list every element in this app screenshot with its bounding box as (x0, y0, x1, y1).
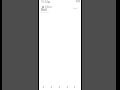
button[interactable]: Account (42, 6, 44, 8)
staticText: 10:24● (41, 0, 50, 4)
staticText: ▮▮▮ (76, 0, 81, 3)
button[interactable]: Tab 4 (64, 83, 70, 89)
button[interactable]: Tab 2 (48, 83, 54, 89)
button[interactable]: Edit (73, 6, 78, 9)
button[interactable]: Tab 1 (40, 83, 46, 89)
button[interactable]: Tab 3 (56, 83, 62, 89)
staticText: Inbox (45, 5, 52, 9)
staticText: No mail (41, 11, 49, 14)
button[interactable]: Tab 5 (71, 83, 77, 89)
staticText: Mail (41, 8, 47, 12)
